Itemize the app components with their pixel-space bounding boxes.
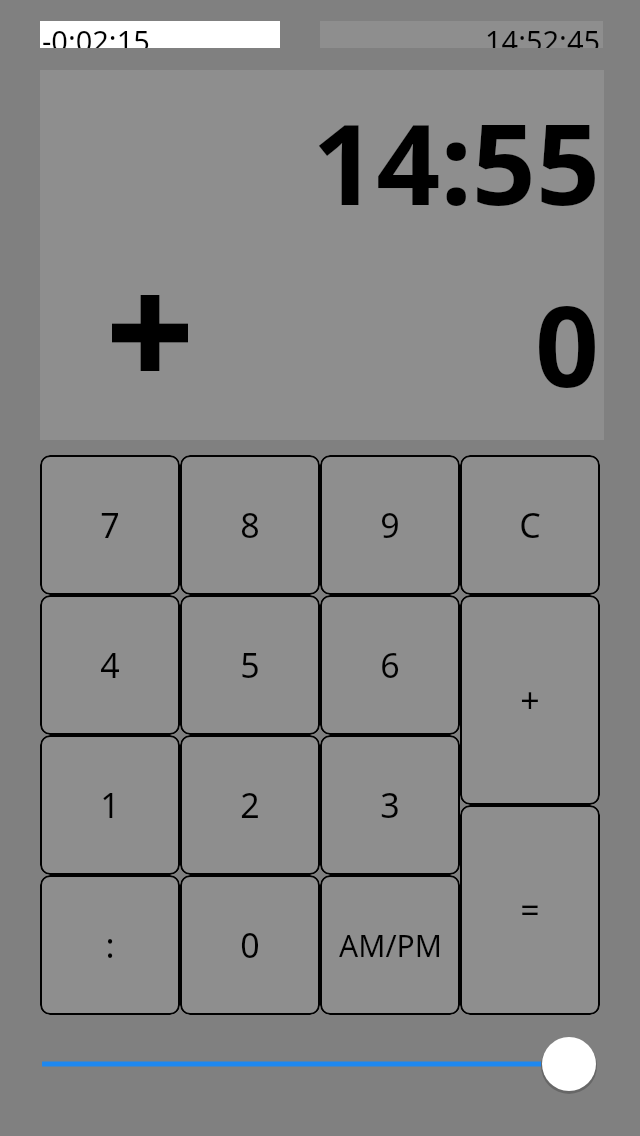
staticText: 7 [100,502,120,548]
staticText: 14:55 [312,85,600,238]
button[interactable]: : [40,875,180,1015]
button[interactable]: 7 [40,455,180,595]
staticText: 14:52:45 [485,21,601,48]
button[interactable]: AM/PM [320,875,460,1015]
staticText: 4 [100,642,120,688]
staticText: 6 [380,642,400,688]
staticText: 9 [380,502,400,548]
staticText: 0 [535,267,600,420]
button[interactable]: 8 [180,455,320,595]
button[interactable]: Brightness slider [20,1030,620,1100]
button[interactable]: -0:02:15 [40,21,280,48]
button[interactable]: 14:52:45 [320,21,603,48]
button[interactable]: + [460,595,600,805]
staticText: = [520,887,540,933]
staticText: 8 [240,502,260,548]
staticText: C [519,502,541,548]
button[interactable]: 3 [320,735,460,875]
button[interactable]: 1 [40,735,180,875]
button[interactable]: 5 [180,595,320,735]
staticText: 5 [240,642,260,688]
button[interactable]: C [460,455,600,595]
button[interactable]: 9 [320,455,460,595]
button[interactable]: = [460,805,600,1015]
button[interactable]: 6 [320,595,460,735]
staticText: 2 [240,782,260,828]
button[interactable]: 2 [180,735,320,875]
staticText: -0:02:15 [42,21,150,48]
staticText: 0 [240,922,260,968]
staticText: + [520,677,540,723]
button[interactable]: 4 [40,595,180,735]
staticText: 3 [380,782,400,828]
staticText: : [105,922,115,968]
button[interactable]: 0 [180,875,320,1015]
staticText: AM/PM [339,925,442,966]
staticText: 1 [100,782,120,828]
